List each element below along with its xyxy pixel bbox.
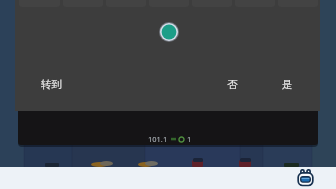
staticText: 否 bbox=[227, 78, 238, 91]
button[interactable]: 否 bbox=[227, 78, 238, 91]
staticText: 101.1 bbox=[148, 134, 168, 144]
staticText: 是 bbox=[282, 78, 293, 91]
button[interactable]: Assistant bbox=[297, 168, 314, 187]
button[interactable] bbox=[159, 22, 179, 42]
button[interactable]: 转到 bbox=[41, 78, 62, 91]
button[interactable]: 是 bbox=[282, 78, 293, 91]
staticText: 转到 bbox=[41, 78, 62, 91]
staticText: 1 bbox=[187, 134, 192, 144]
